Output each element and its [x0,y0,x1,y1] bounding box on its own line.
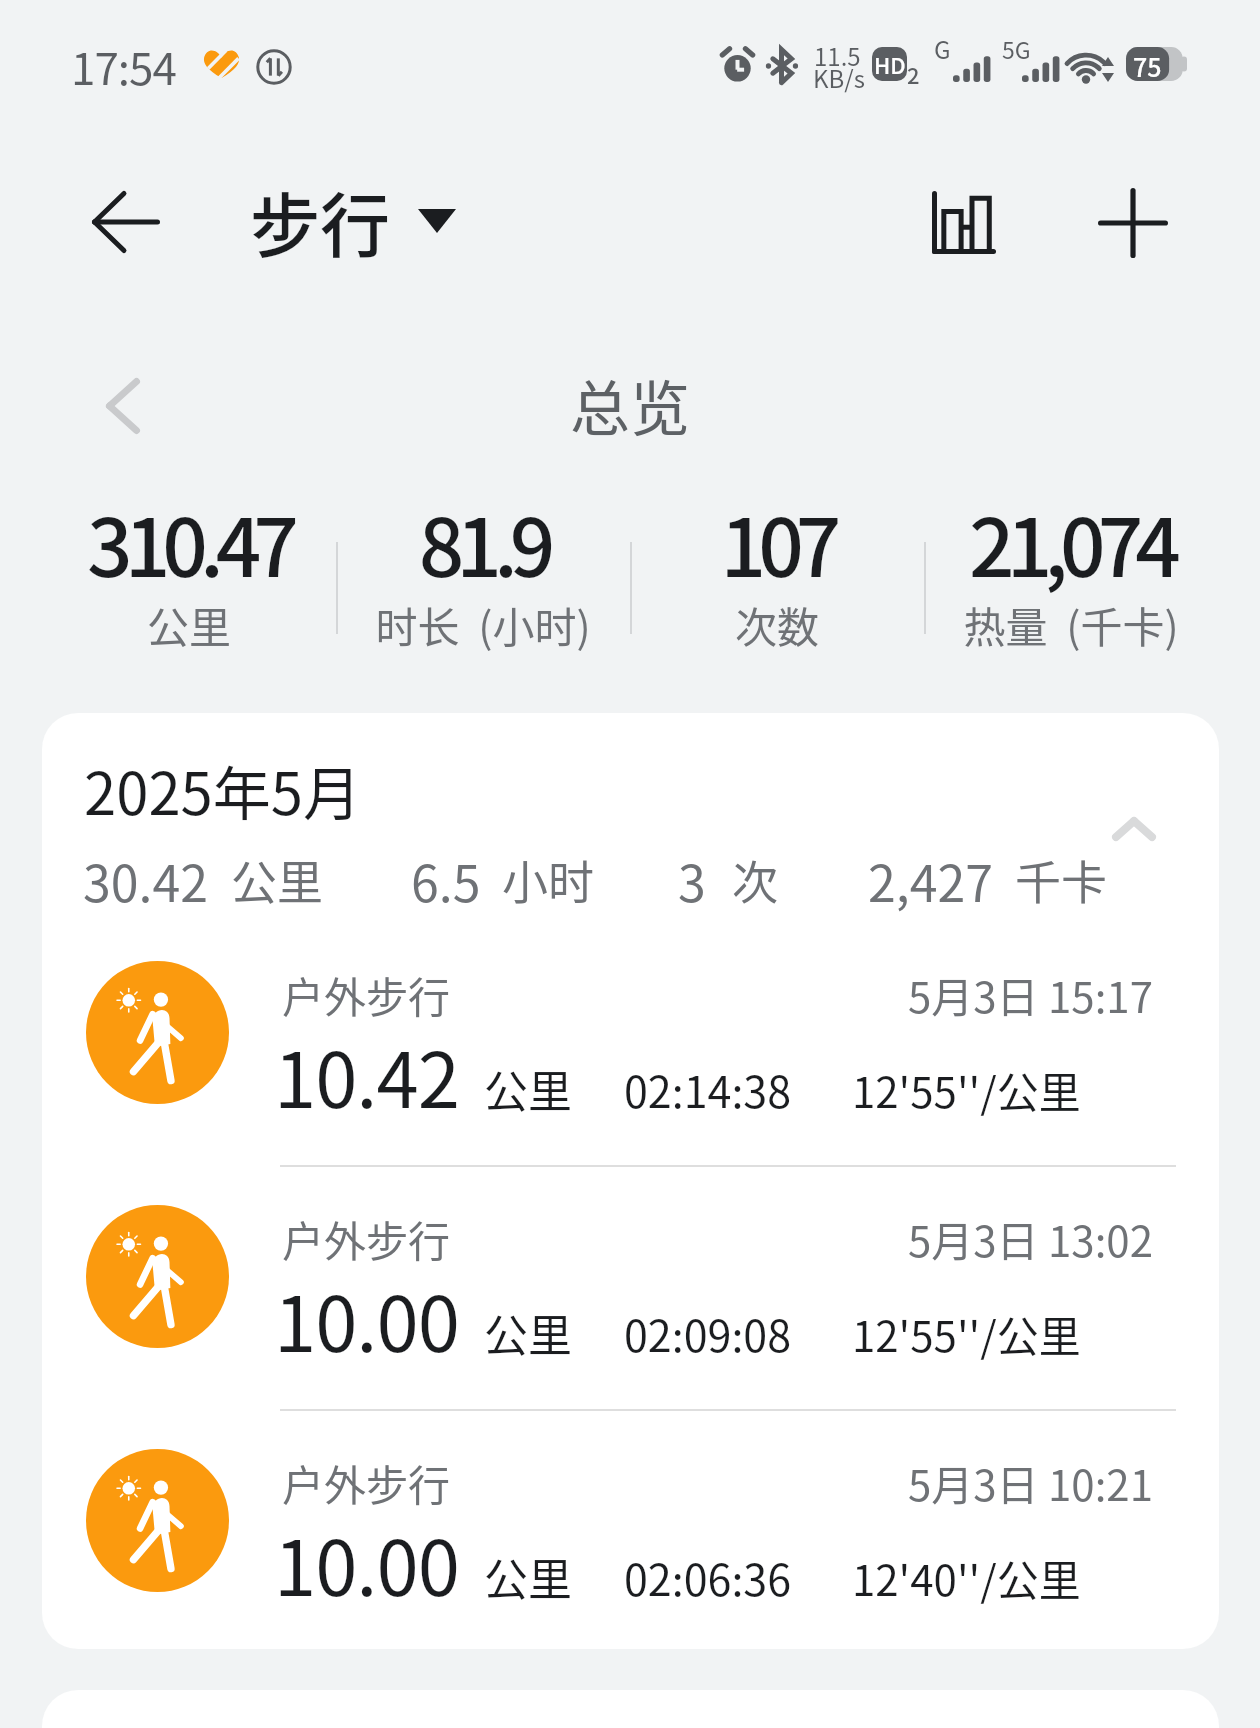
button[interactable]: Statistics [905,163,1025,283]
staticText: 30.42 [83,844,208,916]
staticText: 次 [732,846,778,913]
staticText: 107 [630,484,924,600]
staticText: 12'55''/公里 [852,1059,1081,1120]
staticText: 5月3日 15:17 [908,964,1153,1025]
button[interactable]: Add [1073,163,1193,283]
staticText: 千卡 [1015,846,1107,913]
button[interactable]: Back [66,167,186,279]
staticText: 户外步行 [282,1452,451,1513]
staticText: 11.5 [814,38,861,73]
staticText: 2,427 [868,844,993,916]
button[interactable]: 户外步行 [42,1197,1219,1397]
staticText: 02:09:08 [624,1302,792,1364]
staticText: 12'55''/公里 [852,1303,1081,1364]
staticText: 6.5 [411,844,481,916]
staticText: 公里 [231,846,323,913]
staticText: 次数 [630,594,924,655]
staticText: 2025年5月 [84,748,361,832]
staticText: 10.00 [274,1264,459,1374]
staticText: 02:06:36 [624,1546,792,1608]
staticText: 21,074 [924,484,1218,600]
button[interactable]: Previous period [85,352,165,432]
staticText: 热量 (千卡) [924,594,1218,655]
staticText: HD [874,48,906,80]
staticText: 公里 [42,594,336,655]
staticText: KB/s [813,60,865,95]
staticText: 公里 [484,1057,572,1121]
staticText: 户外步行 [282,1208,451,1269]
staticText: 75 [1133,48,1162,84]
staticText: 5月3日 13:02 [908,1208,1153,1269]
staticText: 17:54 [71,34,176,98]
button[interactable]: 步行 [240,167,470,279]
button[interactable]: 户外步行 [42,953,1219,1153]
staticText: G [934,31,951,66]
staticText: 12'40''/公里 [852,1547,1081,1608]
staticText: 步行 [250,171,390,272]
staticText: 10.00 [274,1508,459,1618]
staticText: 310.47 [42,484,336,600]
staticText: 10.42 [274,1020,459,1130]
staticText: 小时 [502,846,594,913]
staticText: 总览 [0,361,1260,448]
staticText: 5G [1002,32,1031,65]
staticText: 2 [907,58,920,90]
staticText: 02:14:38 [624,1058,792,1120]
staticText: 户外步行 [282,964,451,1025]
staticText: 时长 (小时) [336,594,630,655]
button[interactable]: Collapse [1082,781,1182,881]
staticText: 公里 [484,1545,572,1609]
staticText: 公里 [484,1301,572,1365]
button[interactable]: 户外步行 [42,1441,1219,1641]
staticText: 3 [678,844,706,916]
staticText: 81.9 [336,484,630,600]
staticText: 5月3日 10:21 [908,1452,1153,1513]
